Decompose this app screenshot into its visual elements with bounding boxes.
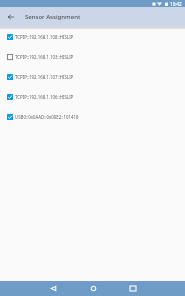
- button[interactable]: Back: [5, 11, 17, 23]
- button[interactable]: Recent apps: [119, 281, 147, 296]
- staticText: Sensor Assignment: [25, 13, 81, 21]
- button[interactable]: TCPIP::192.168.1.108::HISLIP: [0, 27, 185, 47]
- button[interactable]: TCPIP::192.168.1.103::HISLIP: [0, 47, 185, 67]
- staticText: USB0::0x0AAD::0x00E2::101418: [15, 114, 79, 120]
- button[interactable]: TCPIP::192.168.1.107::HISLIP: [0, 67, 185, 87]
- staticText: TCPIP::192.168.1.107::HISLIP: [15, 74, 74, 80]
- staticText: 10:42: [170, 1, 182, 7]
- staticText: TCPIP::192.168.1.103::HISLIP: [15, 54, 74, 60]
- staticText: TCPIP::192.168.1.106::HISLIP: [15, 94, 74, 100]
- button[interactable]: TCPIP::192.168.1.106::HISLIP: [0, 87, 185, 107]
- button[interactable]: Home: [79, 281, 107, 296]
- button[interactable]: USB0::0x0AAD::0x00E2::101418: [0, 107, 185, 127]
- button[interactable]: Back: [39, 281, 67, 296]
- staticText: TCPIP::192.168.1.108::HISLIP: [15, 34, 74, 40]
